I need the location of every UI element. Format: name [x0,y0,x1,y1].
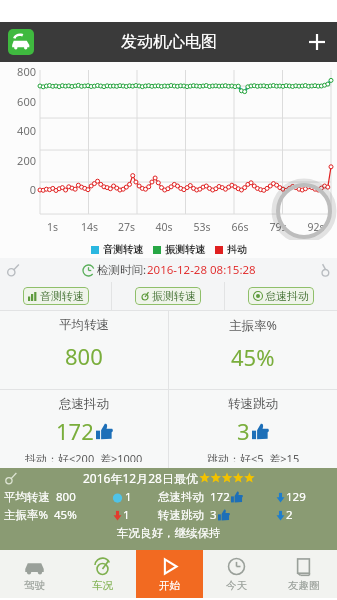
button[interactable]: 友趣圈 [270,550,337,598]
staticText: 172 [56,416,94,446]
staticText: 129 [286,489,306,505]
staticText: 主振率% 45% [4,507,112,523]
staticText: 怠速抖动 [59,396,109,412]
staticText: 转速跳动 3 [158,507,217,523]
staticText: 200 [4,153,36,168]
staticText: 车况良好，继续保持 [117,526,221,540]
staticText: 音测转速 [103,243,143,256]
staticText: 驾驶 [24,579,45,592]
button[interactable]: 今天 [203,550,270,598]
staticText: 转速跳动 [228,396,278,412]
button[interactable]: 平均转速 [0,311,168,377]
staticText: 27s [108,220,145,234]
staticText: 1 [123,507,130,523]
staticText: 1s [34,220,71,234]
button[interactable]: 转速跳动 [169,390,337,468]
staticText: 怠速抖动 [265,289,309,303]
staticText: 音测转速 [40,289,84,303]
staticText: 开始 [159,579,180,592]
button[interactable]: 车况 [68,550,136,598]
staticText: 0 [4,182,36,197]
staticText: 今天 [226,579,247,592]
staticText: 66s [221,220,259,234]
staticText: 1 [125,489,132,505]
staticText: 检测时间: [97,262,147,278]
button[interactable]: 怠速抖动 [0,390,168,468]
staticText: 53s [183,220,221,234]
button[interactable]: 主振率% [169,311,337,378]
staticText: 800 [4,64,36,79]
staticText: 2 [286,507,293,523]
button[interactable]: 怠速抖动 [248,287,314,305]
staticText: 2016年12月28日最优 [83,470,198,486]
staticText: 800 [65,341,103,371]
staticText: 400 [4,123,36,138]
button[interactable]: Add [297,22,337,62]
staticText: 40s [145,220,183,234]
staticText: 怠速抖动 172 [158,489,230,505]
staticText: 92s [297,220,335,234]
staticText: 600 [4,94,36,109]
staticText: 跳动：好<5 差>15 [207,451,300,462]
staticText: 45% [231,342,275,372]
staticText: 抖动：好<200 差>1000 [25,451,143,462]
staticText: 3 [237,416,250,446]
staticText: 2016-12-28 08:15:28 [147,262,256,278]
button[interactable]: 音测转速 [23,287,89,305]
staticText: 振测转速 [165,243,205,256]
staticText: 振测转速 [152,289,196,303]
button[interactable]: 振测转速 [135,287,201,305]
staticText: 平均转速 [59,317,109,333]
staticText: 主振率% [229,317,277,334]
staticText: 发动机心电图 [121,32,217,52]
staticText: 79s [259,220,297,234]
staticText: 抖动 [227,243,247,256]
staticText: 车况 [92,579,113,592]
button[interactable]: 驾驶 [0,550,68,598]
button[interactable]: 开始 [136,550,203,598]
staticText: 友趣圈 [288,579,320,592]
staticText: 平均转速 800 [4,489,112,505]
button[interactable]: App icon [8,29,34,55]
staticText: 14s [71,220,108,234]
